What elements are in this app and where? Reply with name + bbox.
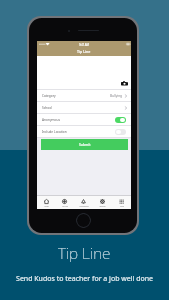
staticText: Tip Line [77,49,91,54]
button[interactable]: Home [37,196,55,209]
staticText: Category [42,94,56,98]
staticText: School [42,106,52,110]
staticText: Home [44,205,49,207]
staticText: Send Kudos to teacher for a job well don… [16,274,153,284]
staticText: Settings [99,205,106,207]
staticText: More [120,205,124,207]
button[interactable]: Submit [41,139,128,150]
staticText: Notifications [79,205,89,207]
button[interactable]: Notifications [74,196,93,209]
button[interactable]: School [37,102,131,113]
staticText: Tip Line [62,205,68,207]
button[interactable]: Attach photo [121,80,128,87]
staticText: Include Location [42,130,67,134]
staticText: Submit [79,142,91,147]
staticText: Bullying [110,94,123,98]
button[interactable]: More [112,196,131,209]
staticText: 9:41 AM [79,43,89,47]
button[interactable]: Anonymous [37,114,131,125]
staticText: Anonymous [42,118,60,122]
staticText: Tip Line [58,242,111,263]
button[interactable]: Settings [93,196,112,209]
button[interactable]: Include Location [37,126,131,137]
button[interactable]: Tip Line [55,196,74,209]
button[interactable]: Category [37,90,131,101]
